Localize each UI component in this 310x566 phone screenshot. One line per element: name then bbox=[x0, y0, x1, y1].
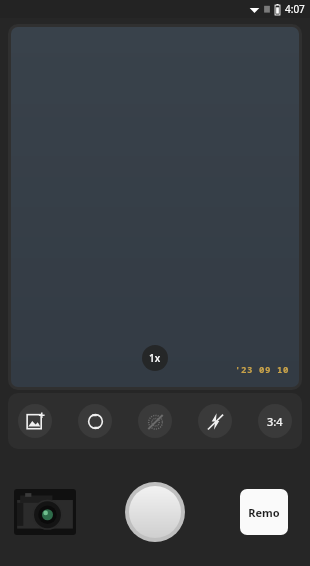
button[interactable]: 3:4 bbox=[258, 404, 292, 438]
button[interactable]: Gallery bbox=[14, 489, 76, 535]
staticText: Remo bbox=[248, 505, 280, 520]
button[interactable]: Filters bbox=[18, 404, 52, 438]
button[interactable]: Switch camera bbox=[78, 404, 112, 438]
staticText: '23 09 10 bbox=[235, 363, 290, 375]
button[interactable]: Remo bbox=[240, 489, 288, 535]
button[interactable]: Shutter bbox=[125, 482, 185, 542]
button[interactable]: Flash off bbox=[198, 404, 232, 438]
staticText: 4:07 bbox=[285, 2, 305, 16]
button[interactable]: 1x bbox=[142, 345, 168, 371]
staticText: 1x bbox=[149, 351, 161, 365]
button[interactable]: Timer off bbox=[138, 404, 172, 438]
staticText: 3:4 bbox=[267, 414, 283, 429]
